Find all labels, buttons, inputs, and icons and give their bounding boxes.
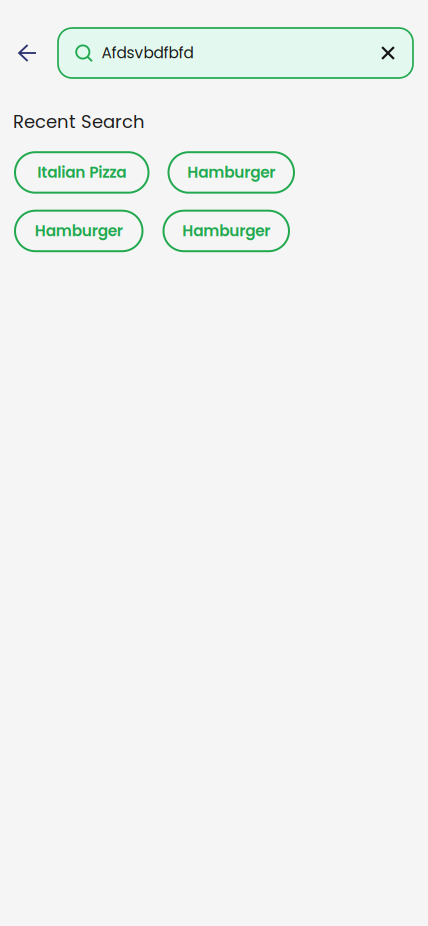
staticText: Italian Pizza: [37, 162, 126, 183]
staticText: Recent Search: [13, 109, 145, 134]
button[interactable]: Italian Pizza: [15, 152, 148, 193]
button[interactable]: Hamburger: [168, 152, 294, 193]
button[interactable]: Hamburger: [163, 211, 289, 251]
button[interactable]: Back: [0, 28, 58, 78]
button[interactable]: Clear search: [381, 28, 413, 78]
staticText: Afdsvbdfbfd: [102, 42, 194, 64]
button[interactable]: Hamburger: [15, 211, 142, 251]
staticText: Hamburger: [35, 220, 123, 242]
staticText: Hamburger: [187, 162, 275, 183]
staticText: Hamburger: [182, 220, 270, 242]
